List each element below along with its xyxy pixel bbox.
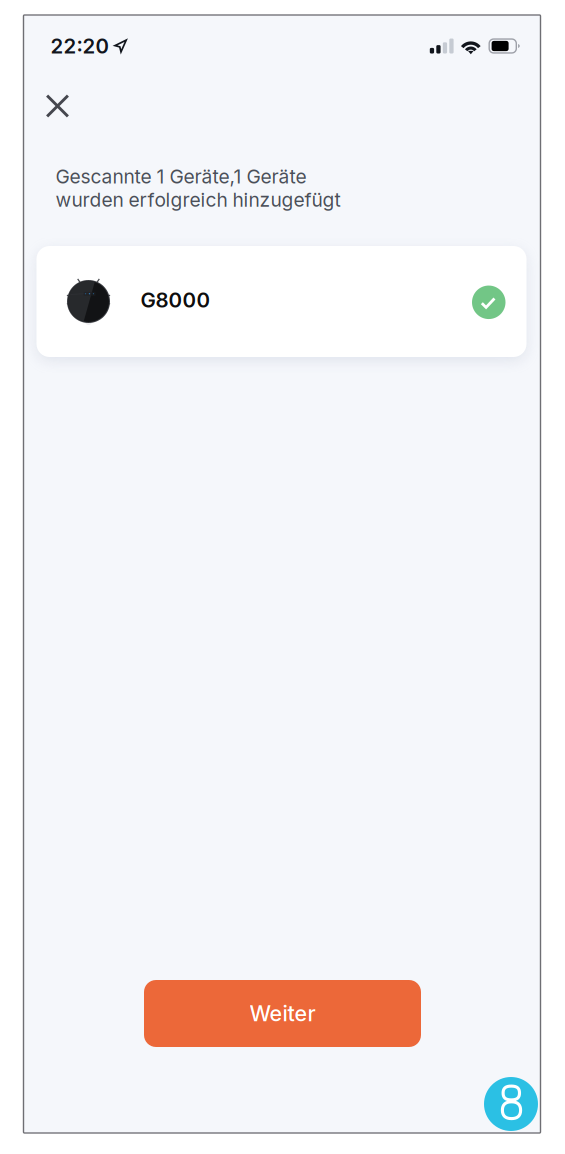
staticText: Weiter	[249, 1000, 315, 1026]
button[interactable]: Weiter	[144, 980, 421, 1047]
staticText: Gescannte 1 Geräte,1 Geräte wurden erfol…	[55, 165, 340, 211]
button[interactable]: G8000	[36, 246, 526, 357]
button[interactable]: Close	[35, 84, 79, 128]
staticText: G8000	[140, 288, 210, 312]
staticText: 22:20	[50, 34, 108, 58]
